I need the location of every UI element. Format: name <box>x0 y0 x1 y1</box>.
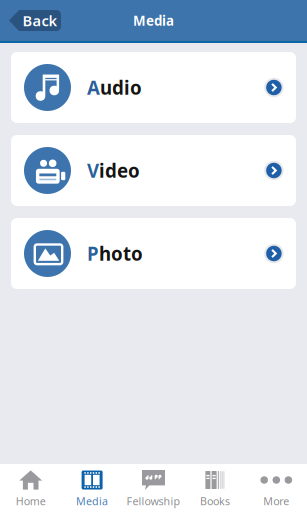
button[interactable]: Fellowship <box>123 464 184 512</box>
staticText: hoto <box>99 241 143 266</box>
staticText: Fellowship <box>126 494 180 508</box>
button[interactable]: Home <box>0 464 61 512</box>
staticText: P <box>87 241 99 266</box>
button[interactable]: Media <box>61 464 123 512</box>
button[interactable]: V <box>11 135 296 206</box>
staticText: More <box>263 494 289 508</box>
staticText: ideo <box>99 158 140 183</box>
staticText: Media <box>133 12 174 29</box>
staticText: Home <box>16 494 46 508</box>
staticText: V <box>87 158 99 183</box>
staticText: Media <box>76 494 108 508</box>
button[interactable]: More <box>246 464 307 512</box>
button[interactable]: A <box>11 52 296 123</box>
button[interactable]: P <box>11 218 296 289</box>
staticText: udio <box>100 75 142 100</box>
button[interactable]: Books <box>184 464 246 512</box>
button[interactable]: Back <box>9 10 61 31</box>
staticText: A <box>87 75 100 100</box>
staticText: Back <box>22 11 57 30</box>
staticText: Books <box>200 494 230 508</box>
